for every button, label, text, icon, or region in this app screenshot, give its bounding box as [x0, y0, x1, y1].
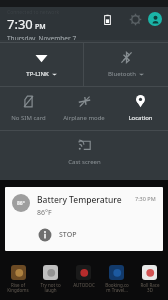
staticText: 7:30 PM [135, 195, 156, 202]
button[interactable]: 86° [5, 187, 163, 251]
button[interactable]: Location on [112, 87, 168, 122]
button[interactable]: Booking.co m Travel… [100, 263, 133, 296]
staticText: 86°F [37, 208, 52, 218]
button[interactable]: Cast screen [56, 131, 112, 166]
button[interactable]: No SIM card [0, 87, 56, 122]
staticText: 7:30 [7, 15, 33, 33]
button[interactable]: Airplane mode [56, 87, 112, 122]
button[interactable]: Try not to laugh [34, 263, 67, 296]
button[interactable]: Battery [100, 12, 114, 26]
button[interactable]: STOP [5, 226, 163, 251]
staticText: STOP [59, 230, 77, 240]
staticText: 86° [17, 200, 25, 207]
staticText: Try not to laugh [40, 282, 61, 294]
staticText: Location [128, 114, 153, 122]
staticText: Battery Temperature [37, 194, 122, 206]
button[interactable]: Rise of Kingdoms [2, 263, 34, 296]
staticText: PM [35, 22, 46, 32]
button[interactable]: AUTODOC [67, 263, 100, 290]
staticText: AUTODOC [73, 282, 95, 288]
staticText: Bluetooth [108, 70, 136, 78]
staticText: TP-LINK [26, 70, 49, 78]
button[interactable]: Bluetooth off [84, 43, 168, 78]
staticText: Thursday, November 7 [7, 34, 77, 40]
staticText: Rise of Kingdoms [7, 282, 29, 294]
staticText: Roll Race 3D [140, 282, 160, 294]
button[interactable]: User profile [148, 12, 162, 26]
staticText: No SIM card [11, 114, 46, 122]
staticText: Airplane mode [63, 114, 105, 122]
button[interactable]: Wi-Fi TP-LINK [0, 43, 83, 78]
staticText: Booking.co m Travel… [105, 282, 129, 294]
button[interactable]: Settings [128, 12, 142, 26]
staticText: Cast screen [68, 158, 101, 166]
button[interactable]: Roll Race 3D [133, 263, 166, 296]
